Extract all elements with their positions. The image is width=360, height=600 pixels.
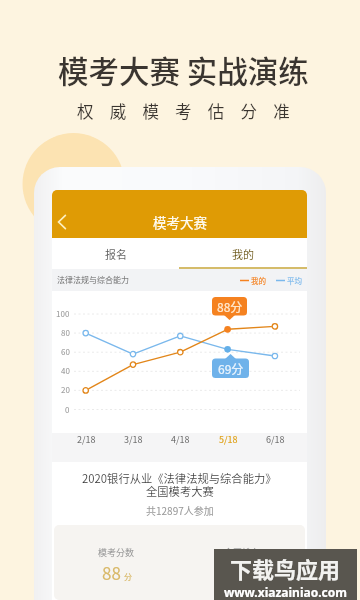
- staticText: 6/18: [266, 433, 285, 446]
- button[interactable]: Back: [52, 207, 82, 237]
- staticText: 下载鸟应用: [230, 552, 341, 584]
- staticText: 60: [61, 346, 70, 358]
- staticText: 283: [222, 560, 251, 585]
- staticText: 权威模考估分准: [77, 99, 306, 123]
- staticText: 模考分数: [98, 546, 135, 559]
- staticText: 名: [254, 571, 262, 583]
- staticText: 分: [124, 571, 132, 583]
- staticText: 40: [61, 365, 70, 377]
- staticText: 我的: [251, 275, 266, 286]
- staticText: 2/18: [77, 433, 96, 446]
- staticText: www.xiazainiao.com: [224, 584, 347, 600]
- staticText: 法律法规与综合能力: [57, 274, 129, 286]
- staticText: 共12897人参加: [146, 503, 214, 517]
- staticText: 5/18: [219, 433, 238, 446]
- staticText: 69分: [218, 360, 244, 377]
- button[interactable]: 我的: [179, 238, 307, 269]
- staticText: 4/18: [171, 433, 190, 446]
- staticText: 20: [61, 384, 70, 396]
- staticText: 88分: [217, 298, 243, 315]
- staticText: 报名: [105, 246, 127, 262]
- staticText: 100: [56, 308, 70, 320]
- staticText: 全国排名: [224, 546, 261, 559]
- staticText: 模考大赛 实战演练: [58, 48, 309, 92]
- staticText: 80: [61, 327, 70, 339]
- staticText: 全国模考大赛: [146, 483, 214, 499]
- staticText: 2020银行从业《法律法规与综合能力》: [82, 470, 277, 486]
- staticText: 平均: [287, 275, 302, 286]
- staticText: 我的: [232, 246, 254, 262]
- staticText: 3/18: [124, 433, 143, 446]
- button[interactable]: 报名: [52, 238, 179, 269]
- staticText: 模考大赛: [153, 212, 207, 232]
- staticText: 88: [102, 560, 121, 585]
- staticText: 0: [65, 404, 70, 416]
